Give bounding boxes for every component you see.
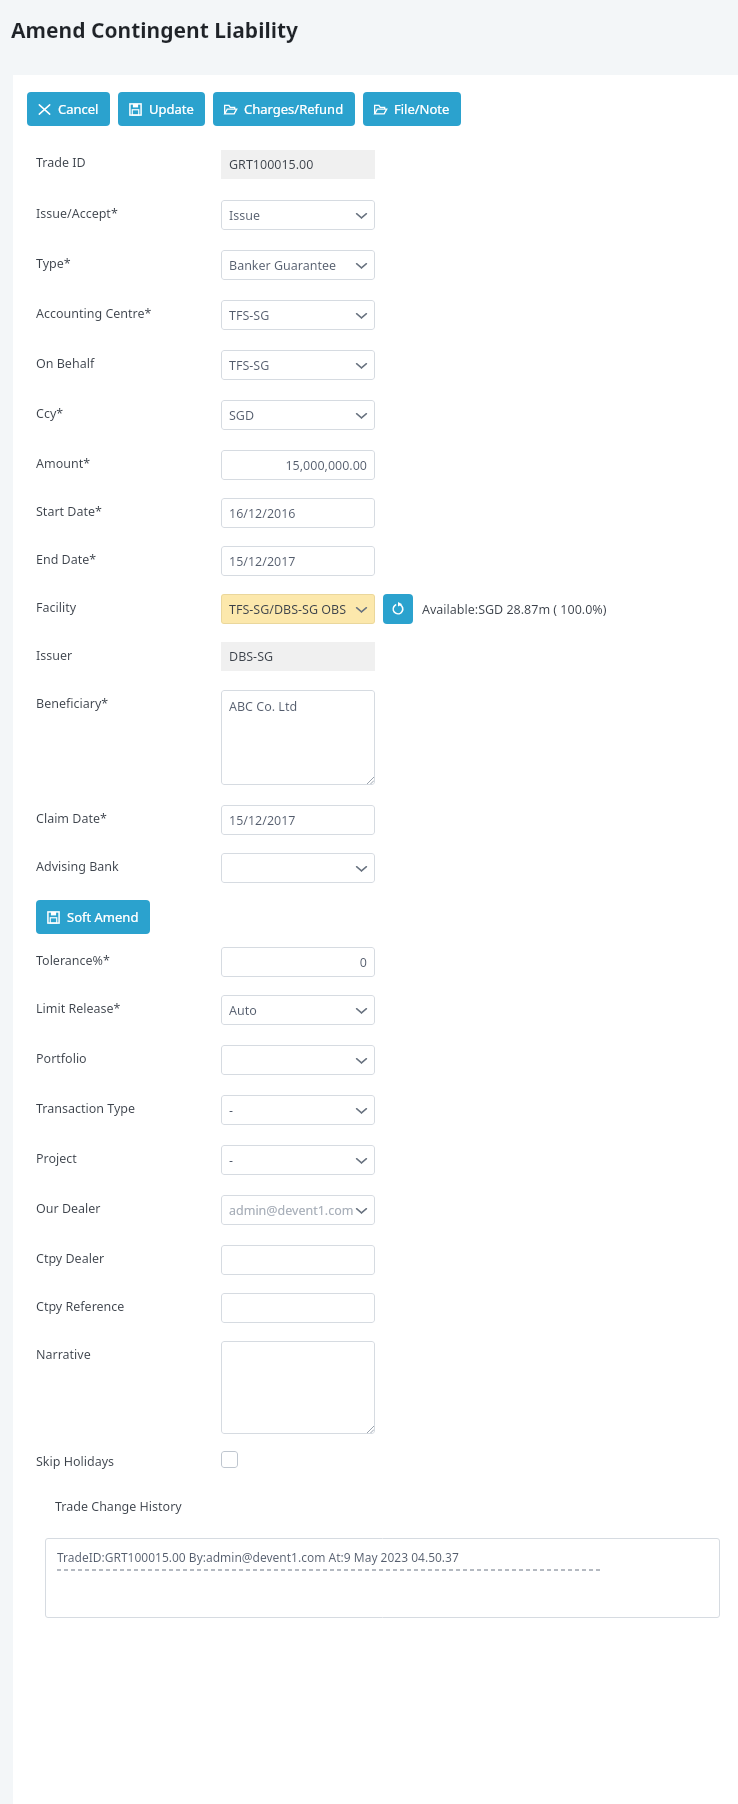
staticText: GRT100015.00 [229, 156, 314, 173]
staticText: 15/12/2017 [229, 553, 367, 570]
staticText: Our Dealer [36, 1200, 101, 1217]
staticText: Narrative [36, 1346, 91, 1363]
button[interactable]: Cancel [27, 92, 110, 126]
staticText: Portfolio [36, 1050, 87, 1067]
staticText: Update [149, 100, 194, 118]
staticText: Transaction Type [36, 1100, 136, 1117]
button[interactable]: Auto [221, 995, 375, 1025]
button[interactable]: ABC Co. Ltd [221, 690, 375, 785]
staticText: DBS-SG [229, 648, 274, 665]
staticText: Project [36, 1150, 77, 1167]
staticText: Ctpy Reference [36, 1298, 125, 1315]
button[interactable]: Update [118, 92, 205, 126]
staticText: Start Date* [36, 503, 102, 520]
button[interactable] [221, 1245, 375, 1275]
staticText: - [229, 1102, 355, 1119]
staticText: Amend Contingent Liability [11, 16, 299, 45]
staticText: 15/12/2017 [229, 812, 367, 829]
button[interactable]: 16/12/2016 [221, 498, 375, 528]
staticText: Trade ID [36, 154, 86, 171]
button[interactable]: Charges/Refund [213, 92, 355, 126]
staticText: File/Note [394, 100, 450, 118]
button[interactable] [221, 1341, 375, 1434]
staticText: TFS-SG/DBS-SG OBS [229, 601, 355, 618]
staticText: Ccy* [36, 405, 64, 422]
staticText: Cancel [58, 100, 99, 118]
staticText: Ctpy Dealer [36, 1250, 105, 1267]
button[interactable]: SGD [221, 400, 375, 430]
button[interactable]: File/Note [363, 92, 461, 126]
button[interactable]: TFS-SG [221, 300, 375, 330]
button[interactable]: TFS-SG/DBS-SG OBS [221, 594, 375, 624]
staticText: Auto [229, 1002, 355, 1019]
button[interactable]: admin@devent1.com [221, 1195, 375, 1225]
button[interactable]: 15/12/2017 [221, 546, 375, 576]
staticText: Issue [229, 207, 355, 224]
button[interactable]: Banker Guarantee [221, 250, 375, 280]
button[interactable]: - [221, 1145, 375, 1175]
staticText: Accounting Centre* [36, 305, 152, 322]
staticText: Beneficiary* [36, 695, 109, 712]
staticText: Type* [36, 255, 71, 272]
staticText: Advising Bank [36, 858, 119, 875]
staticText: End Date* [36, 551, 97, 568]
staticText: On Behalf [36, 355, 95, 372]
staticText: - [229, 1152, 355, 1169]
button[interactable]: 15,000,000.00 [221, 450, 375, 480]
button[interactable]: Refresh facility [383, 594, 413, 624]
staticText: TradeID:GRT100015.00 By:admin@devent1.co… [57, 1549, 459, 1565]
staticText: SGD [229, 407, 355, 424]
staticText: Issue/Accept* [36, 205, 118, 222]
staticText: Facility [36, 599, 77, 616]
button[interactable] [221, 1045, 375, 1075]
button[interactable]: TradeID:GRT100015.00 By:admin@devent1.co… [45, 1538, 720, 1618]
staticText: Amount* [36, 455, 91, 472]
staticText: 15,000,000.00 [229, 457, 367, 474]
button[interactable]: - [221, 1095, 375, 1125]
staticText: Available:SGD 28.87m ( 100.0%) [422, 601, 607, 618]
staticText: TFS-SG [229, 307, 355, 324]
staticText: admin@devent1.com [229, 1202, 355, 1219]
staticText: Soft Amend [67, 908, 139, 926]
staticText: Trade Change History [55, 1498, 182, 1515]
button[interactable] [221, 1293, 375, 1323]
staticText: Claim Date* [36, 810, 107, 827]
staticText: 16/12/2016 [229, 505, 367, 522]
staticText: ABC Co. Ltd [229, 698, 298, 715]
staticText: Tolerance%* [36, 952, 110, 969]
staticText: Issuer [36, 647, 73, 664]
button[interactable]: Issue [221, 200, 375, 230]
staticText: Limit Release* [36, 1000, 121, 1017]
button[interactable] [221, 853, 375, 883]
staticText: TFS-SG [229, 357, 355, 374]
staticText: 0 [229, 954, 367, 971]
button[interactable]: TFS-SG [221, 350, 375, 380]
button[interactable]: Skip Holidays [221, 1451, 238, 1468]
staticText: Banker Guarantee [229, 257, 355, 274]
staticText: Skip Holidays [36, 1453, 115, 1470]
staticText: Charges/Refund [244, 100, 344, 118]
button[interactable]: Soft Amend [36, 900, 150, 934]
button[interactable]: 0 [221, 947, 375, 977]
button[interactable]: 15/12/2017 [221, 805, 375, 835]
